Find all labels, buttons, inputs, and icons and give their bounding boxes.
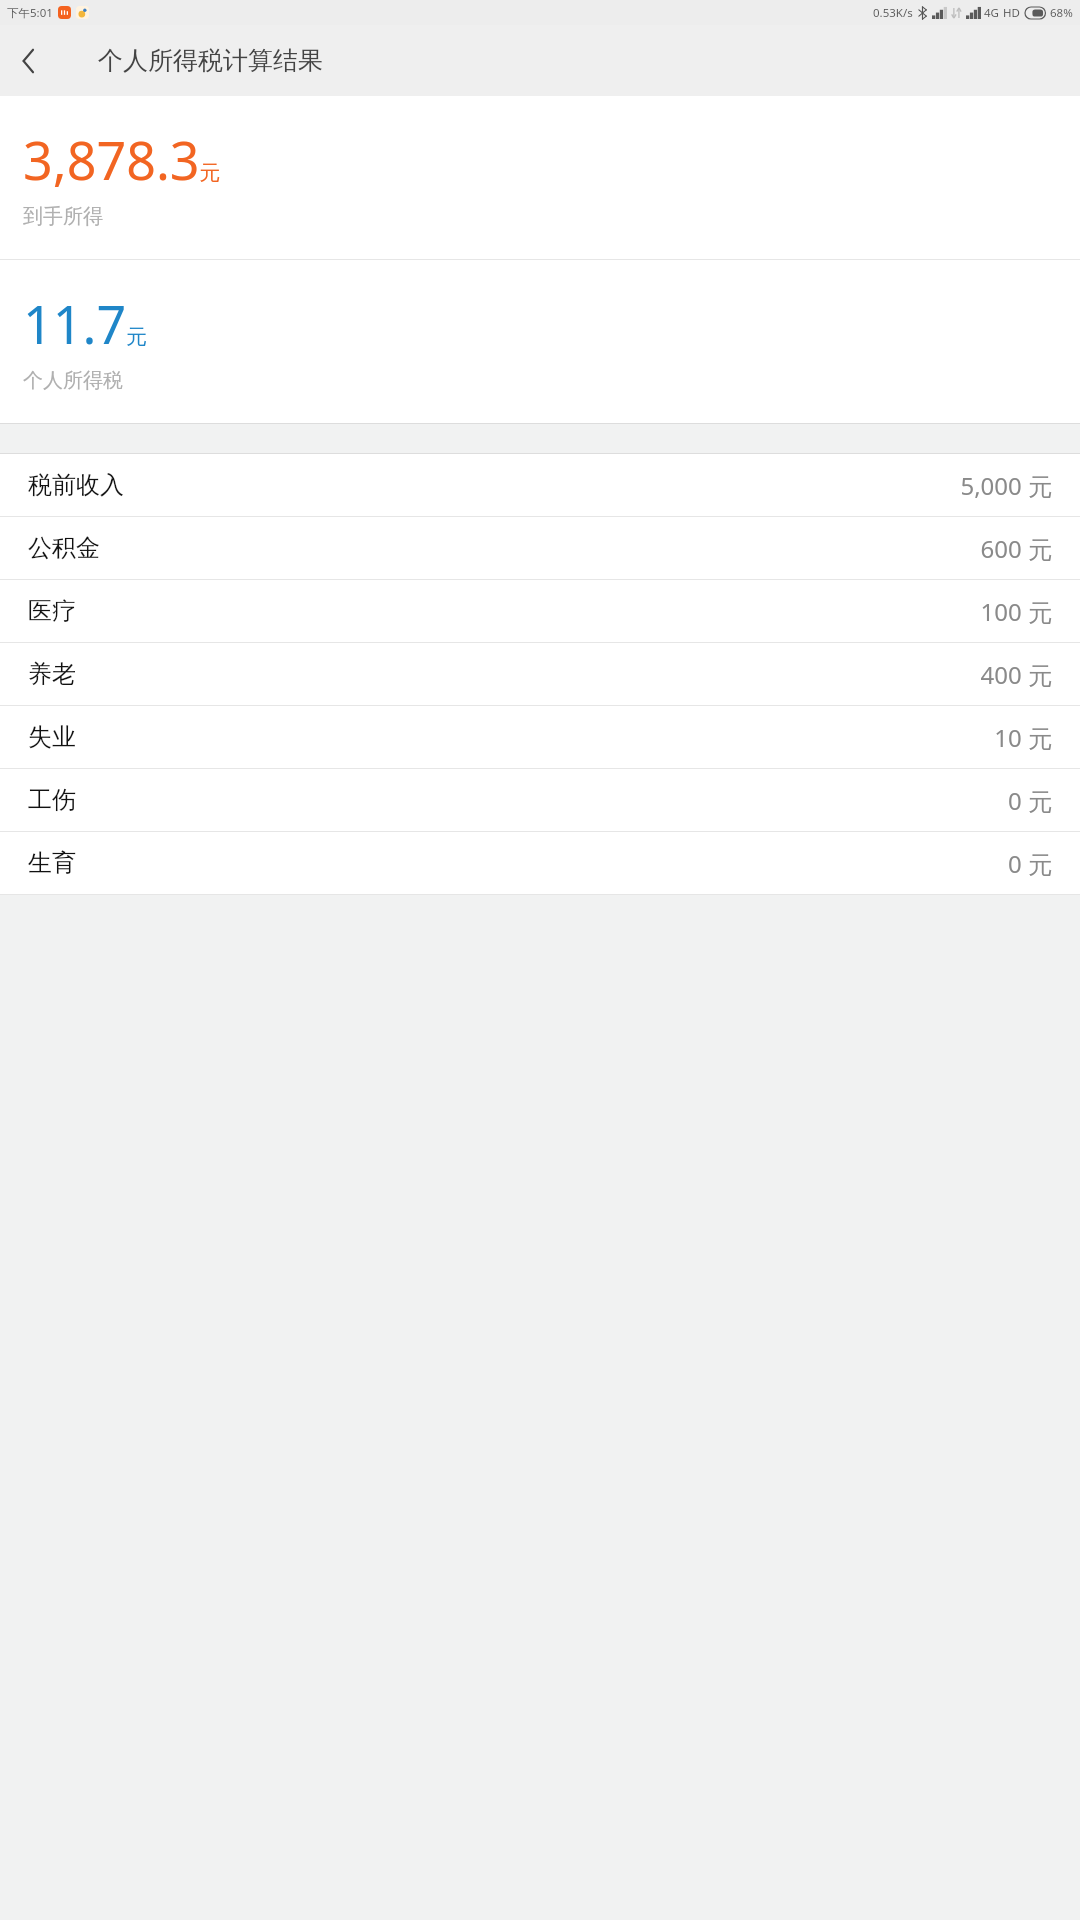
staticText: 5,000 元: [960, 469, 1052, 502]
staticText: 医疗: [28, 596, 76, 626]
staticText: 到手所得: [23, 204, 103, 229]
button[interactable]: Back: [0, 33, 56, 89]
staticText: 10 元: [994, 721, 1052, 754]
staticText: 个人所得税: [23, 368, 123, 393]
button[interactable]: 税前收入: [0, 454, 1080, 516]
staticText: HD: [1003, 5, 1020, 21]
staticText: 公积金: [28, 533, 100, 563]
staticText: 养老: [28, 659, 76, 689]
staticText: 4G: [984, 5, 999, 21]
staticText: 工伤: [28, 785, 76, 815]
button[interactable]: 养老: [0, 643, 1080, 705]
button[interactable]: 生育: [0, 832, 1080, 894]
staticText: 下午5:01: [7, 5, 53, 21]
staticText: 0.53K/s: [873, 5, 913, 21]
staticText: 600 元: [980, 532, 1052, 565]
staticText: 个人所得税计算结果: [98, 45, 323, 76]
button[interactable]: 医疗: [0, 580, 1080, 642]
staticText: 68%: [1050, 5, 1073, 21]
staticText: 3,878.3元: [23, 124, 221, 195]
staticText: 失业: [28, 722, 76, 752]
staticText: 400 元: [980, 658, 1052, 691]
button[interactable]: 失业: [0, 706, 1080, 768]
staticText: 税前收入: [28, 470, 124, 500]
staticText: 生育: [28, 848, 76, 878]
staticText: 0 元: [1008, 847, 1052, 880]
button[interactable]: 工伤: [0, 769, 1080, 831]
staticText: 100 元: [980, 595, 1052, 628]
staticText: 11.7元: [23, 288, 148, 359]
staticText: 0 元: [1008, 784, 1052, 817]
button[interactable]: 公积金: [0, 517, 1080, 579]
